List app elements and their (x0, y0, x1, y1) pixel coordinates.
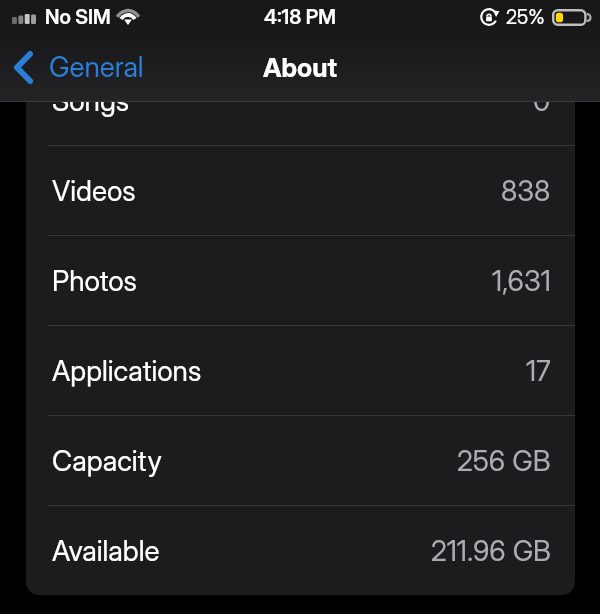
staticText: 0 (533, 84, 551, 118)
button[interactable]: Capacity (26, 416, 575, 506)
staticText: Videos (52, 174, 136, 208)
button[interactable]: Applications (26, 326, 575, 416)
button[interactable]: Photos (26, 236, 575, 326)
button[interactable]: Videos (26, 146, 575, 236)
staticText: Available (52, 534, 160, 568)
staticText: Songs (52, 84, 129, 118)
staticText: 838 (501, 174, 551, 208)
staticText: Applications (52, 354, 202, 388)
staticText: No SIM (45, 5, 111, 29)
button[interactable]: Back to General (14, 50, 144, 84)
staticText: 1,631 (492, 264, 551, 298)
staticText: 211.96 GB (431, 534, 551, 568)
staticText: 17 (526, 354, 551, 388)
button[interactable]: Available (26, 506, 575, 595)
staticText: 25% (506, 5, 545, 29)
staticText: Capacity (52, 444, 162, 478)
staticText: 4:18 PM (264, 5, 336, 29)
button[interactable]: Songs (26, 56, 575, 146)
staticText: About (263, 52, 337, 83)
staticText: Photos (52, 264, 137, 298)
staticText: 256 GB (457, 444, 551, 478)
staticText: General (49, 50, 144, 84)
